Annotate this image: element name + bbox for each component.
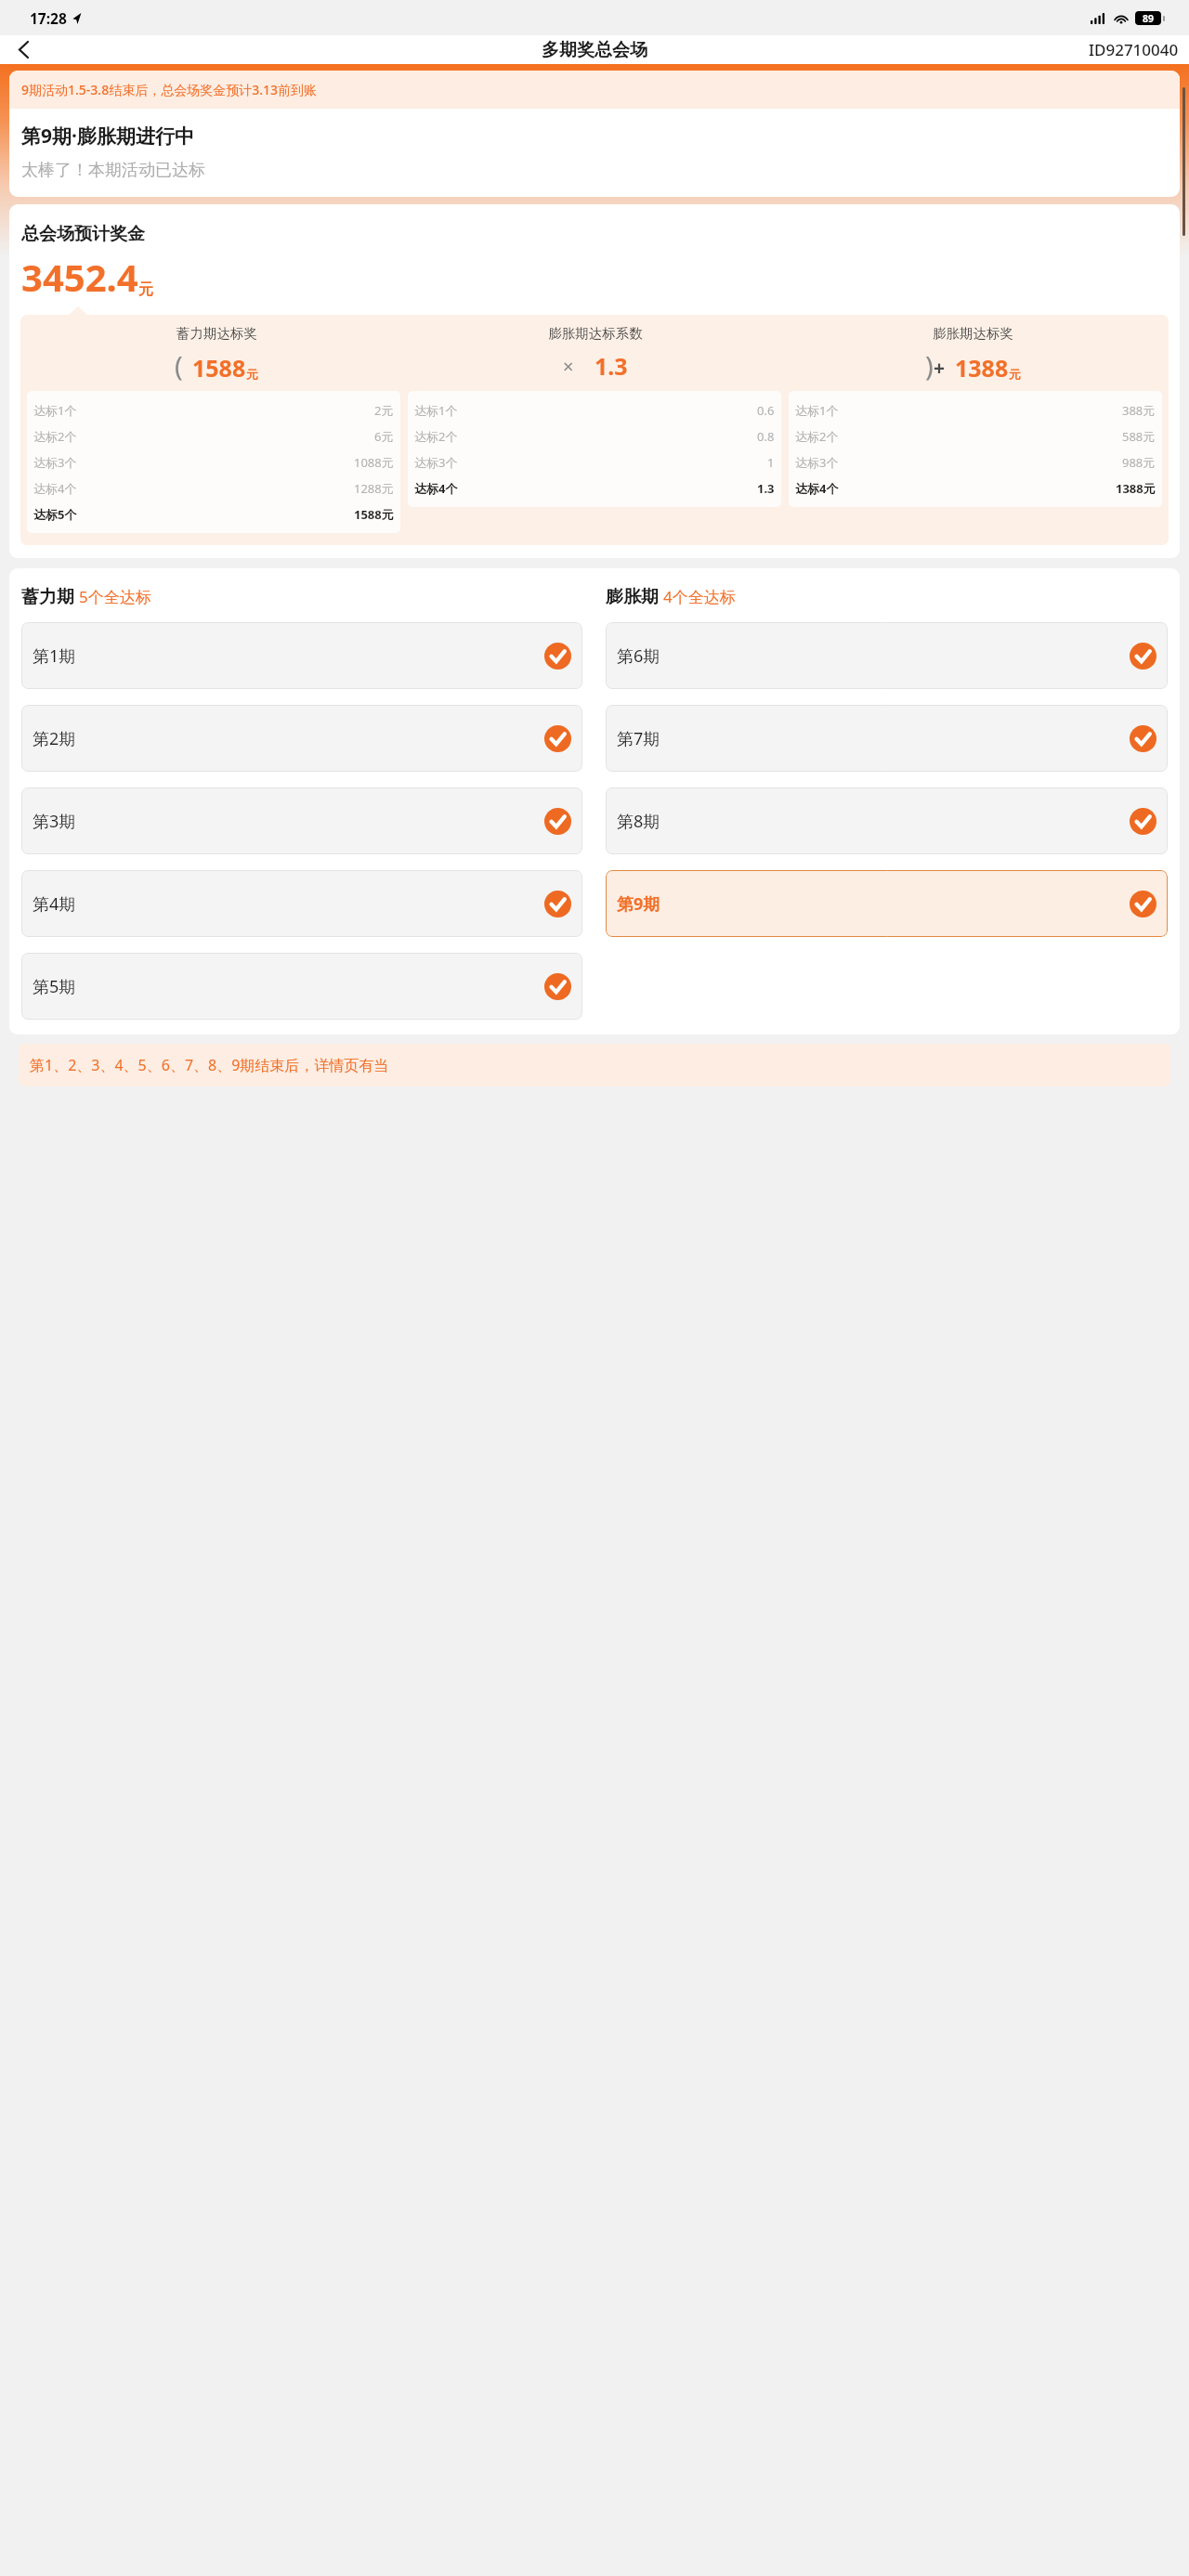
staticText: × [563, 354, 574, 379]
staticText: 第9期 [617, 892, 660, 916]
staticText: 1288元 [354, 480, 394, 497]
button[interactable]: 第7期 [606, 705, 1168, 772]
staticText: 17:28 [30, 8, 67, 28]
staticText: 达标2个 [33, 428, 77, 445]
button[interactable]: 第1期 [21, 622, 582, 689]
staticText: 89 [1143, 12, 1155, 25]
staticText: 1 [767, 454, 775, 471]
staticText: 达标4个 [795, 480, 839, 497]
staticText: 第4期 [33, 892, 76, 916]
button[interactable]: 第9期 [606, 870, 1168, 937]
staticText: 第5期 [33, 975, 76, 998]
staticText: 达标3个 [33, 454, 77, 471]
staticText: 蓄力期达标奖 [176, 325, 257, 342]
staticText: 0.6 [757, 402, 775, 419]
staticText: 第1期 [33, 644, 76, 668]
staticText: 0.8 [757, 428, 775, 445]
staticText: 多期奖总会场 [542, 39, 647, 61]
staticText: 太棒了！本期活动已达标 [21, 160, 205, 181]
staticText: 6元 [374, 428, 394, 445]
staticText: 元 [1009, 367, 1021, 382]
button[interactable]: 第3期 [21, 787, 582, 854]
staticText: 第6期 [617, 644, 660, 668]
button[interactable]: 第5期 [21, 953, 582, 1020]
staticText: 达标3个 [795, 454, 839, 471]
staticText: ) [925, 347, 934, 384]
staticText: 膨胀期 [606, 586, 659, 608]
staticText: 第1、2、3、4、5、6、7、8、9期结束后，详情页有当 [30, 1055, 389, 1075]
staticText: 达标4个 [33, 480, 77, 497]
staticText: 达标2个 [795, 428, 839, 445]
button[interactable]: Back [7, 35, 39, 64]
button[interactable]: 第8期 [606, 787, 1168, 854]
staticText: 达标5个 [33, 506, 77, 523]
button[interactable]: 第6期 [606, 622, 1168, 689]
staticText: 达标1个 [795, 402, 839, 419]
staticText: 1388元 [1116, 480, 1156, 497]
staticText: 第7期 [617, 727, 660, 750]
staticText: 蓄力期 [21, 586, 74, 608]
staticText: 达标2个 [414, 428, 458, 445]
staticText: 1.3 [757, 480, 775, 497]
staticText: + [934, 355, 946, 382]
staticText: 达标1个 [414, 402, 458, 419]
staticText: 元 [138, 280, 153, 299]
staticText: 第3期 [33, 810, 76, 833]
staticText: 达标3个 [414, 454, 458, 471]
staticText: 1088元 [354, 454, 394, 471]
staticText: 588元 [1122, 428, 1156, 445]
staticText: 2元 [374, 402, 394, 419]
staticText: 1588 [192, 352, 246, 384]
staticText: 1588元 [354, 506, 394, 523]
staticText: ( [175, 347, 183, 384]
staticText: ID92710040 [1089, 39, 1179, 60]
staticText: 总会场预计奖金 [21, 223, 145, 245]
staticText: 膨胀期达标奖 [933, 325, 1013, 342]
staticText: 1388 [955, 352, 1009, 384]
staticText: 3452.4 [21, 252, 138, 302]
button[interactable]: 第2期 [21, 705, 582, 772]
staticText: 膨胀期达标系数 [548, 325, 643, 342]
staticText: 第9期·膨胀期进行中 [21, 123, 194, 150]
button[interactable]: 第4期 [21, 870, 582, 937]
staticText: 9期活动1.5-3.8结束后，总会场奖金预计3.13前到账 [21, 81, 317, 98]
staticText: 第8期 [617, 810, 660, 833]
staticText: 388元 [1122, 402, 1156, 419]
staticText: 达标4个 [414, 480, 458, 497]
staticText: 4个全达标 [663, 586, 736, 607]
staticText: 元 [246, 367, 258, 382]
staticText: 5个全达标 [79, 586, 151, 607]
staticText: 988元 [1122, 454, 1156, 471]
staticText: 1.3 [594, 350, 628, 382]
staticText: 第2期 [33, 727, 76, 750]
staticText: 达标1个 [33, 402, 77, 419]
